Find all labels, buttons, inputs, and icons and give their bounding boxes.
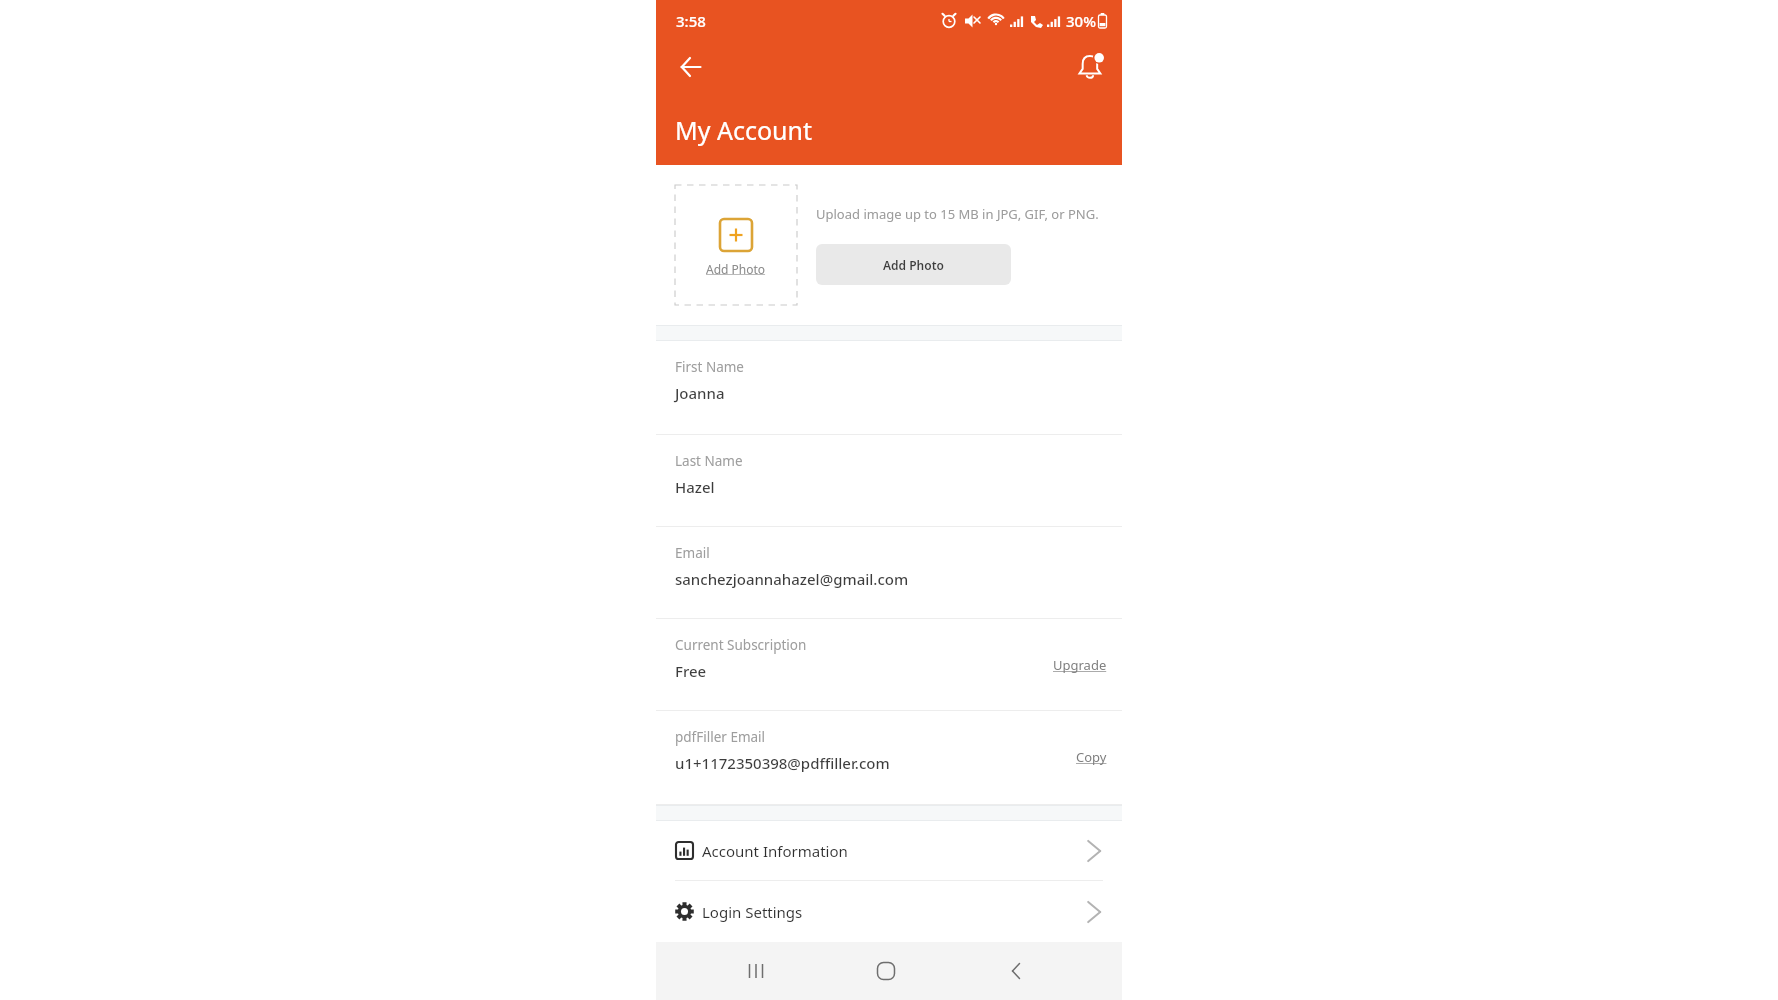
button[interactable]: Back	[670, 46, 712, 88]
button[interactable]: Add Photo	[675, 185, 797, 305]
staticText: Hazel	[675, 477, 715, 497]
staticText: Current Subscription	[675, 636, 807, 654]
button[interactable]: Home	[864, 942, 908, 1000]
staticText: Login Settings	[702, 902, 803, 922]
staticText: Last Name	[675, 452, 743, 470]
staticText: Free	[675, 661, 707, 681]
staticText: 3:58	[676, 11, 706, 31]
button[interactable]: Login Settings	[656, 881, 1122, 942]
staticText: Upload image up to 15 MB in JPG, GIF, or…	[816, 205, 1099, 223]
button[interactable]: Current Subscription	[656, 619, 1122, 711]
button[interactable]: Recents	[734, 942, 778, 1000]
staticText: Upgrade	[1053, 656, 1107, 674]
button[interactable]: Last Name	[656, 435, 1122, 527]
staticText: 30%	[1066, 11, 1096, 31]
staticText: My Account	[675, 113, 812, 147]
button[interactable]: First Name	[656, 341, 1122, 435]
button[interactable]: Email	[656, 527, 1122, 619]
staticText: Joanna	[675, 383, 725, 403]
staticText: Account Information	[702, 841, 848, 861]
staticText: Copy	[1076, 748, 1107, 766]
staticText: pdfFiller Email	[675, 728, 766, 746]
button[interactable]: Notifications	[1069, 45, 1111, 87]
staticText: Add Photo	[706, 261, 766, 277]
button[interactable]: Add Photo	[816, 244, 1011, 285]
staticText: First Name	[675, 358, 744, 376]
staticText: Add Photo	[883, 257, 944, 273]
staticText: Email	[675, 544, 710, 562]
button[interactable]: pdfFiller Email	[656, 711, 1122, 805]
staticText: sanchezjoannahazel@gmail.com	[675, 569, 909, 589]
staticText: u1+1172350398@pdffiller.com	[675, 753, 890, 773]
button[interactable]: Account Information	[656, 821, 1122, 881]
button[interactable]: Back	[994, 942, 1038, 1000]
